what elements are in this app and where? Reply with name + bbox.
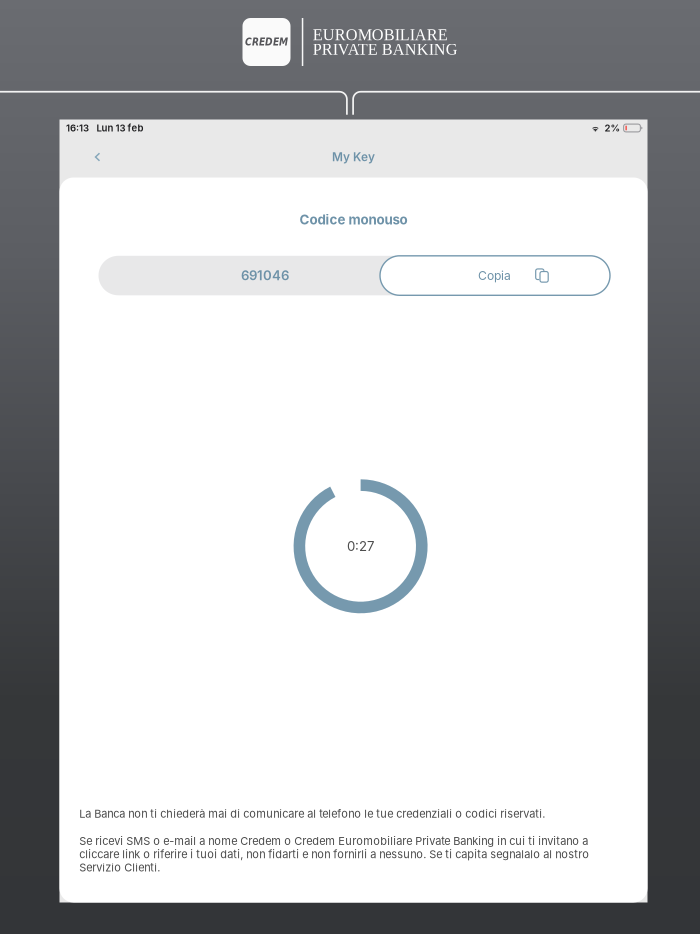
staticText: Copia	[478, 268, 511, 283]
staticText: Se ricevi SMS o e-mail a nome Credem o C…	[79, 834, 589, 874]
staticText: 16:13	[66, 122, 89, 134]
staticText: EUROMOBILIARE	[313, 26, 448, 44]
staticText: Codice monouso	[299, 212, 407, 228]
staticText: My Key	[332, 150, 375, 164]
staticText: CREDEM	[245, 36, 288, 48]
staticText: 2%	[604, 122, 620, 134]
staticText: La Banca non ti chiederà mai di comunica…	[79, 807, 545, 820]
staticText: 691046	[241, 268, 289, 284]
button[interactable]: Back	[77, 136, 117, 177]
staticText: 0:27	[347, 538, 374, 554]
staticText: Lun 13 feb	[96, 122, 143, 134]
staticText: PRIVATE BANKING	[313, 40, 458, 58]
button[interactable]: Copia	[380, 256, 610, 295]
